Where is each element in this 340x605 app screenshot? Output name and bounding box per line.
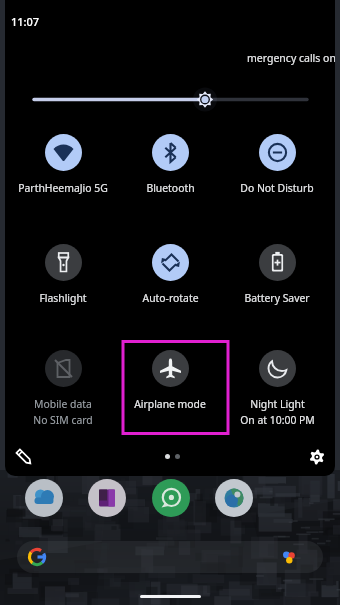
- staticText: Bluetooth: [146, 181, 195, 195]
- button[interactable]: Edit tiles: [10, 443, 38, 471]
- staticText: Flashlight: [39, 291, 87, 305]
- staticText: Airplane mode: [134, 397, 206, 411]
- button[interactable]: Auto-rotate: [117, 233, 223, 307]
- button[interactable]: Settings: [303, 443, 331, 471]
- staticText: Do Not Disturb: [240, 181, 314, 195]
- button[interactable]: Edge: [215, 479, 253, 517]
- button[interactable]: Search: [17, 541, 323, 573]
- button[interactable]: Airplane mode: [117, 339, 223, 413]
- staticText: No SIM card: [33, 413, 93, 427]
- button[interactable]: Brightness: [5, 86, 335, 112]
- button[interactable]: Night Light: [224, 339, 330, 434]
- staticText: 11:07: [11, 14, 40, 29]
- staticText: Auto-rotate: [142, 291, 199, 305]
- button[interactable]: Wi-Fi: [10, 123, 116, 197]
- staticText: On at 10:00 PM: [240, 413, 315, 427]
- button[interactable]: OneDrive: [25, 479, 63, 517]
- button[interactable]: OneNote: [88, 479, 126, 517]
- button[interactable]: Flashlight: [10, 233, 116, 307]
- button[interactable]: Battery Saver: [224, 233, 330, 307]
- staticText: mergency calls onl: [247, 51, 335, 65]
- button[interactable]: Do Not Disturb: [224, 123, 330, 197]
- button[interactable]: Mobile data: [10, 339, 116, 434]
- staticText: Battery Saver: [244, 291, 310, 305]
- staticText: Mobile data: [34, 397, 92, 411]
- staticText: Night Light: [250, 397, 305, 411]
- staticText: ParthHeemaJio 5G: [18, 181, 108, 195]
- button[interactable]: Bluetooth: [117, 123, 223, 197]
- button[interactable]: WhatsApp: [152, 479, 190, 517]
